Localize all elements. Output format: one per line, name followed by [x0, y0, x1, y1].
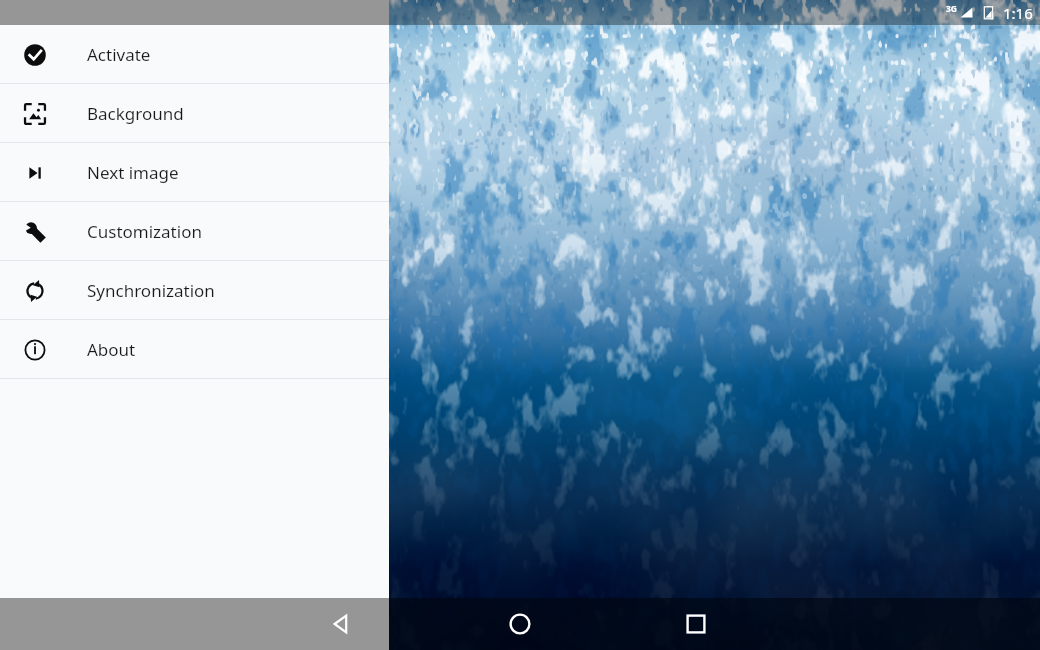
button[interactable]: Background [0, 84, 389, 143]
button[interactable]: Recents [676, 604, 716, 644]
staticText: 1:16 [1003, 3, 1033, 23]
staticText: Activate [87, 43, 151, 66]
button[interactable]: Back [321, 604, 361, 644]
staticText: Synchronization [87, 279, 215, 302]
button[interactable]: Activate [0, 25, 389, 84]
staticText: Background [87, 102, 184, 125]
button[interactable]: Synchronization [0, 261, 389, 320]
button[interactable]: Home [500, 604, 540, 644]
button[interactable]: About [0, 320, 389, 379]
button[interactable]: Customization [0, 202, 389, 261]
staticText: About [87, 338, 136, 361]
button[interactable]: Next image [0, 143, 389, 202]
staticText: Customization [87, 220, 202, 243]
staticText: 3G [946, 3, 958, 15]
staticText: Next image [87, 161, 179, 184]
